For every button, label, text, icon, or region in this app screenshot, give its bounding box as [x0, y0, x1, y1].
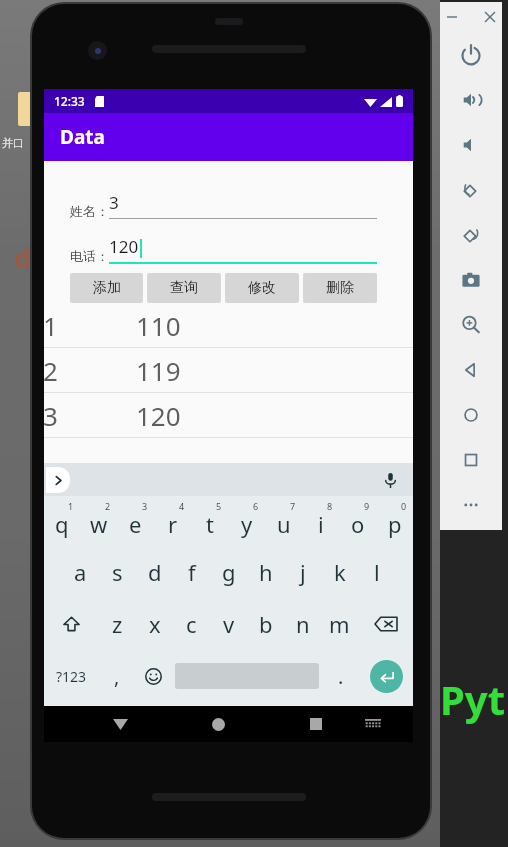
button[interactable]: 修改	[225, 273, 299, 303]
staticText: w	[90, 509, 108, 539]
staticText: 6	[253, 500, 259, 512]
button[interactable]: Rotate right	[440, 212, 502, 257]
staticText: k	[334, 557, 346, 587]
button[interactable]: Minimize	[441, 6, 463, 28]
button[interactable]: 3	[44, 393, 413, 438]
staticText: d	[14, 240, 31, 275]
staticText: o	[351, 509, 365, 539]
button[interactable]: j	[284, 546, 321, 598]
button[interactable]: m	[321, 598, 358, 650]
button[interactable]: n	[284, 598, 321, 650]
staticText: g	[222, 557, 236, 587]
staticText: Data	[60, 124, 105, 150]
button[interactable]: Expand suggestions	[46, 467, 70, 493]
button[interactable]: Home	[200, 706, 236, 742]
button[interactable]: Rotate left	[440, 167, 502, 212]
staticText: l	[374, 557, 380, 587]
button[interactable]: 7	[265, 496, 302, 546]
staticText: h	[259, 557, 273, 587]
staticText: v	[223, 609, 235, 639]
staticText: q	[55, 509, 69, 539]
button[interactable]: d	[136, 546, 173, 598]
staticText: c	[186, 609, 197, 639]
staticText: 8	[327, 500, 333, 512]
button[interactable]: Back	[440, 347, 502, 392]
button[interactable]: 查询	[147, 273, 221, 303]
staticText: 120	[109, 235, 139, 258]
button[interactable]: g	[210, 546, 247, 598]
staticText: 姓名：	[70, 203, 109, 219]
button[interactable]: 2	[80, 496, 117, 546]
button[interactable]: 添加	[70, 273, 143, 303]
button[interactable]: f	[173, 546, 210, 598]
button[interactable]: Close	[479, 6, 501, 28]
staticText: 2	[105, 500, 111, 512]
button[interactable]: 8	[302, 496, 339, 546]
staticText: 0	[401, 500, 407, 512]
staticText: s	[112, 557, 123, 587]
button[interactable]: x	[136, 598, 173, 650]
button[interactable]: ,	[99, 650, 135, 702]
button[interactable]: Recents	[298, 706, 334, 742]
staticText: 12:33	[54, 93, 85, 109]
button[interactable]: Zoom	[440, 302, 502, 347]
button[interactable]: 5	[191, 496, 228, 546]
button[interactable]: Backspace	[358, 598, 413, 650]
staticText: u	[277, 509, 291, 539]
staticText: 3	[142, 500, 148, 512]
staticText: 2	[43, 353, 135, 388]
staticText: 110	[136, 308, 181, 343]
button[interactable]: 0	[376, 496, 413, 546]
staticText: 120	[136, 398, 181, 433]
button[interactable]: 6	[228, 496, 265, 546]
button[interactable]: .	[323, 650, 359, 702]
button[interactable]: ?123	[44, 650, 99, 702]
staticText: 3	[43, 398, 135, 433]
staticText: a	[74, 557, 87, 587]
button[interactable]: 删除	[303, 273, 377, 303]
staticText: 7	[290, 500, 296, 512]
button[interactable]: b	[247, 598, 284, 650]
button[interactable]: Screenshot	[440, 257, 502, 302]
button[interactable]: Emoji	[135, 650, 171, 702]
staticText: n	[296, 609, 310, 639]
button[interactable]: s	[99, 546, 136, 598]
staticText: .	[338, 663, 344, 690]
staticText: j	[300, 557, 306, 587]
button[interactable]: h	[247, 546, 284, 598]
staticText: ?123	[56, 667, 87, 686]
button[interactable]: Recents	[440, 437, 502, 482]
button[interactable]: Volume up	[440, 77, 502, 122]
button[interactable]: Shift	[44, 598, 99, 650]
button[interactable]: 3	[117, 496, 154, 546]
button[interactable]: 1	[44, 496, 80, 546]
button[interactable]: Switch keyboard	[355, 706, 391, 742]
button[interactable]: 9	[339, 496, 376, 546]
staticText: ,	[114, 663, 120, 690]
staticText: Pyt	[440, 672, 506, 726]
button[interactable]: 1	[44, 303, 413, 348]
button[interactable]: Volume down	[440, 122, 502, 167]
button[interactable]: Power	[440, 32, 502, 77]
staticText: i	[318, 509, 324, 539]
staticText: z	[112, 609, 123, 639]
button[interactable]: Home	[440, 392, 502, 437]
button[interactable]: k	[321, 546, 358, 598]
staticText: 并口	[2, 136, 24, 150]
button[interactable]: a	[62, 546, 99, 598]
button[interactable]: c	[173, 598, 210, 650]
button[interactable]: l	[358, 546, 395, 598]
button[interactable]: Voice input	[379, 469, 401, 491]
staticText: 电话：	[70, 248, 109, 264]
button[interactable]: Enter	[359, 650, 413, 702]
button[interactable]: 4	[154, 496, 191, 546]
button[interactable]: Hide keyboard	[102, 706, 138, 742]
staticText: 3	[109, 191, 119, 214]
staticText: 9	[364, 500, 370, 512]
button[interactable]: z	[99, 598, 136, 650]
button[interactable]: 2	[44, 348, 413, 393]
button[interactable]: More	[440, 482, 502, 527]
staticText: b	[259, 609, 273, 639]
button[interactable]: v	[210, 598, 247, 650]
